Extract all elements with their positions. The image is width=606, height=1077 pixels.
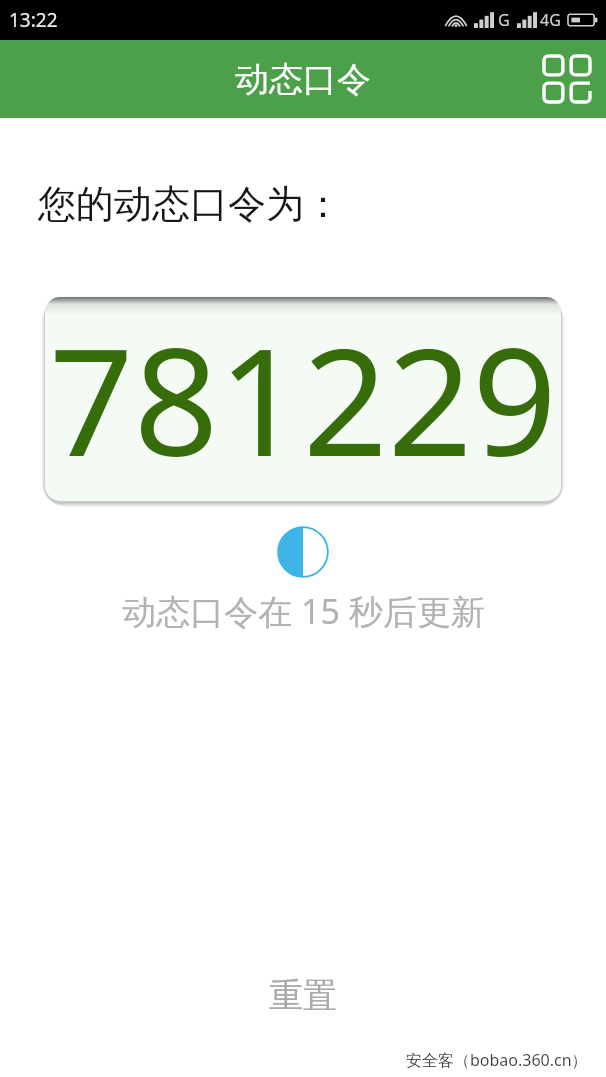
staticText: 重置 bbox=[269, 974, 337, 1017]
staticText: 13:22 bbox=[9, 7, 58, 33]
button[interactable]: 781229 bbox=[45, 297, 561, 501]
staticText: 您的动态口令为： bbox=[38, 180, 342, 228]
staticText: 4G bbox=[540, 9, 561, 31]
staticText: G bbox=[498, 9, 510, 31]
staticText: 动态口令 bbox=[235, 58, 371, 101]
staticText: 安全客（bobao.360.cn） bbox=[406, 1049, 588, 1071]
staticText: 动态口令在 15 秒后更新 bbox=[122, 588, 485, 634]
button[interactable]: 重置 bbox=[239, 966, 367, 1025]
button[interactable]: Apps grid bbox=[528, 40, 606, 118]
staticText: 781229 bbox=[49, 298, 557, 500]
